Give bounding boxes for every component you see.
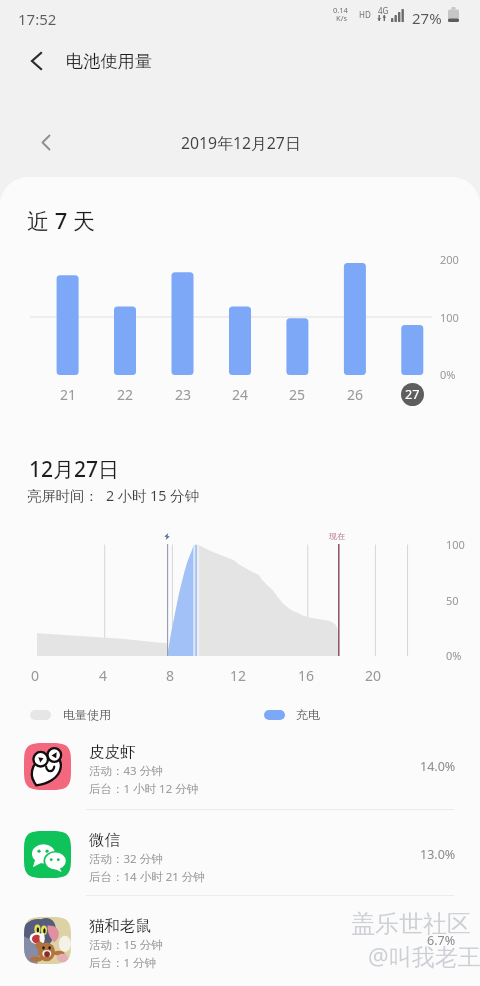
staticText: 200 [440,252,459,267]
staticText: 100 [446,537,465,552]
button[interactable]: 皮皮虾 [0,730,480,803]
staticText: 活动：15 分钟 [89,937,163,953]
staticText: 12 [230,666,247,684]
staticText: 电量使用 [63,707,111,722]
staticText: 盖乐世社区 [351,909,471,939]
staticText: 23 [175,385,192,404]
staticText: @叫我老王 [368,940,480,971]
staticText: 27% [412,8,442,28]
staticText: 微信 [89,830,120,850]
staticText: HD [359,9,371,20]
staticText: 2019年12月27日 [181,132,301,154]
staticText: 亮屏时间： 2 小时 15 分钟 [27,486,199,506]
staticText: 14.0% [420,758,456,775]
staticText: 17:52 [18,9,57,29]
staticText: 4 [99,666,108,684]
staticText: 皮皮虾 [89,742,136,762]
staticText: 0 [31,666,40,684]
staticText: 22 [117,385,134,404]
button[interactable]: 微信 [0,818,480,891]
staticText: 16 [298,666,315,684]
staticText: 12月27日 [29,455,120,484]
staticText: 6.7% [427,932,456,949]
staticText: 电池使用量 [66,50,152,72]
staticText: 0.14 [333,5,348,15]
button[interactable]: Previous day [29,125,63,159]
staticText: 0% [440,367,456,382]
staticText: 24 [232,385,249,404]
staticText: 50 [446,593,459,608]
button[interactable]: 27 [401,383,424,406]
button[interactable]: 猫和老鼠 [0,904,480,977]
staticText: 4G [378,5,389,16]
staticText: 26 [347,385,364,404]
staticText: 近 7 天 [27,205,96,235]
staticText: 20 [365,666,382,684]
staticText: 现在 [329,531,345,541]
staticText: 后台：14 小时 21 分钟 [89,869,205,885]
staticText: 0% [446,648,462,663]
staticText: K/s [336,13,348,23]
button[interactable]: Back [17,42,55,80]
staticText: 100 [440,310,459,325]
staticText: 13.0% [420,846,456,863]
staticText: 27 [405,386,420,403]
staticText: 25 [289,385,306,404]
staticText: 21 [60,385,77,404]
staticText: 活动：43 分钟 [89,763,163,779]
staticText: 后台：1 分钟 [89,955,157,971]
staticText: 后台：1 小时 12 分钟 [89,781,199,797]
staticText: 活动：32 分钟 [89,851,163,867]
staticText: 充电 [296,707,320,722]
staticText: 8 [166,666,175,684]
staticText: 猫和老鼠 [89,916,151,936]
